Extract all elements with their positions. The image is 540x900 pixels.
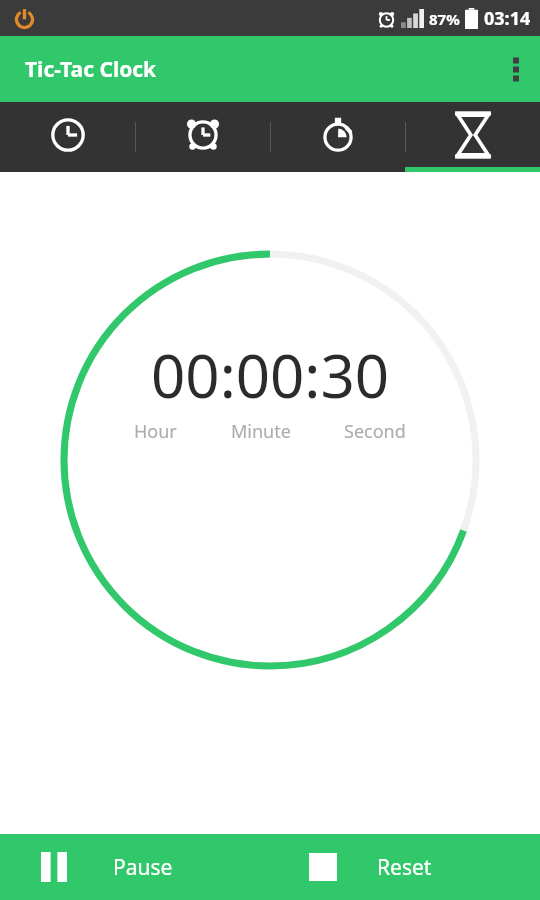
staticText: 87% [429,9,460,29]
button[interactable]: Timer [406,102,540,172]
button[interactable]: Stopwatch [271,102,405,172]
staticText: Reset [377,853,432,882]
staticText: Pause [113,853,173,882]
button[interactable]: Reset [270,834,540,900]
staticText: 03:14 [484,6,531,31]
button[interactable]: Clock [0,102,135,172]
button[interactable]: More options [492,36,540,102]
staticText: Hour [134,419,177,444]
staticText: 00:00:30 [151,334,390,416]
staticText: Minute [231,419,291,444]
staticText: Second [344,419,406,444]
button[interactable]: Alarm [136,102,270,172]
staticText: Tic-Tac Clock [25,55,157,84]
button[interactable]: Pause [0,834,270,900]
